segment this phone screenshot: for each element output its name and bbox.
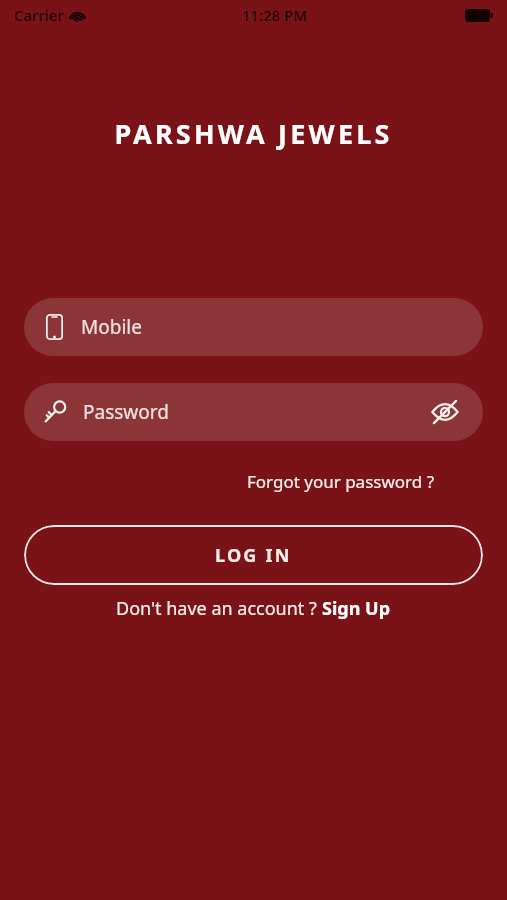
button[interactable]: Forgot your password ?	[175, 466, 507, 497]
button[interactable]: Mobile	[24, 298, 483, 356]
staticText: Forgot your password ?	[247, 470, 435, 493]
button[interactable]: Sign Up	[322, 596, 391, 621]
staticText: Sign Up	[322, 596, 391, 621]
button[interactable]: LOG IN	[24, 525, 483, 585]
staticText: 11:28 PM	[242, 5, 308, 25]
staticText: Don't have an account ?	[116, 596, 322, 621]
button[interactable]: Password	[24, 383, 483, 441]
staticText: Password	[83, 399, 169, 425]
staticText: Mobile	[81, 314, 142, 340]
staticText: PARSHWA JEWELS	[114, 115, 393, 152]
button[interactable]: Show password	[425, 392, 465, 432]
staticText: Carrier	[14, 5, 64, 25]
staticText: LOG IN	[215, 543, 292, 568]
